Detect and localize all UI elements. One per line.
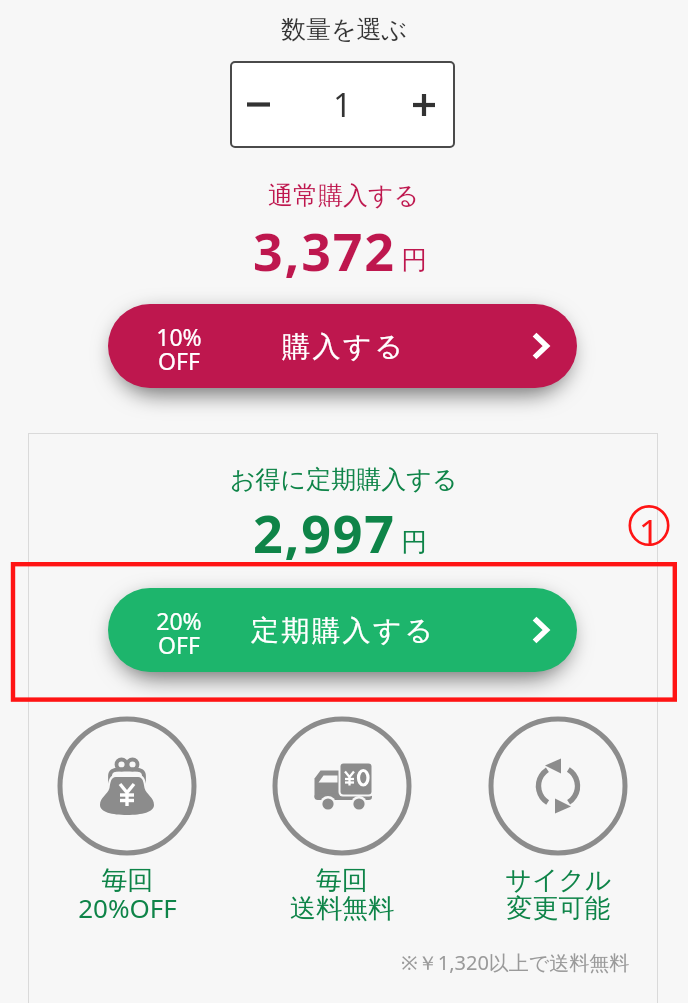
staticText: 20% OFF: [156, 605, 202, 661]
staticText: 購入する: [282, 329, 406, 364]
staticText: 数量を選ぶ: [281, 14, 408, 45]
button[interactable]: Increase quantity: [390, 61, 458, 148]
staticText: 毎回 送料無料: [290, 864, 394, 925]
staticText: 通常購入する: [268, 180, 420, 211]
staticText: 円: [401, 244, 427, 277]
staticText: 定期購入する: [251, 613, 436, 648]
staticText: 3,372: [253, 215, 396, 286]
staticText: ※￥1,320以上で送料無料: [401, 949, 630, 976]
staticText: 10% OFF: [156, 321, 202, 377]
staticText: 円: [401, 526, 427, 559]
button[interactable]: Decrease quantity: [230, 61, 286, 148]
button[interactable]: 10% OFF: [108, 304, 577, 388]
staticText: 1: [333, 82, 352, 127]
staticText: お得に定期購入する: [230, 464, 458, 495]
staticText: 2,997: [253, 497, 396, 568]
staticText: サイクル 変更可能: [505, 864, 612, 925]
staticText: 毎回 20%OFF: [78, 864, 177, 926]
button[interactable]: 20% OFF: [108, 588, 577, 672]
staticText: 1: [638, 506, 660, 546]
